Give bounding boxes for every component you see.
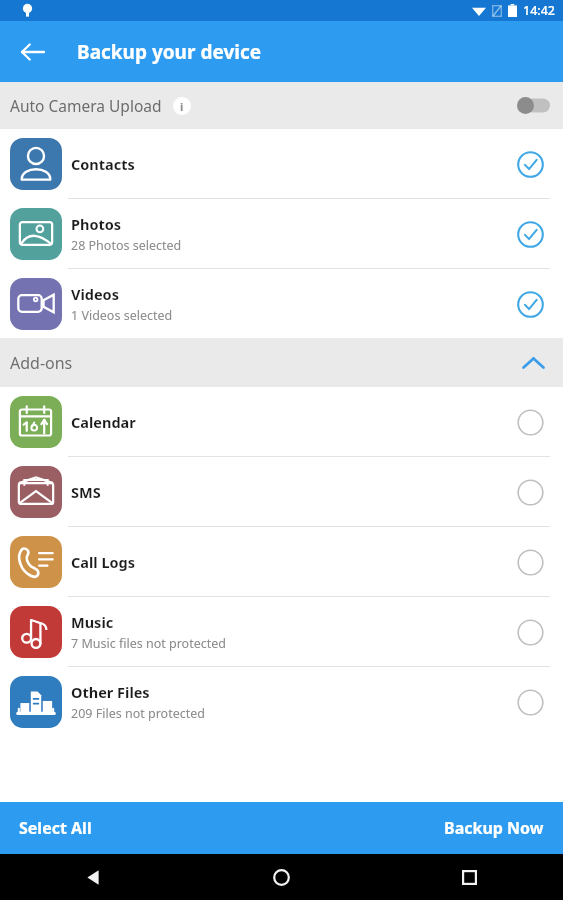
button[interactable]: Recents [375,854,563,900]
button[interactable]: Calendar [0,387,563,456]
staticText: Backup Now [444,817,544,839]
staticText: 14:42 [523,2,556,19]
button[interactable]: Photos [0,199,563,268]
button[interactable]: Home [187,854,375,900]
staticText: Other Files [71,682,150,702]
staticText: 209 Files not protected [71,705,205,722]
button[interactable]: Videos, selected [513,287,547,321]
staticText: i [180,99,184,114]
button[interactable]: SMS [0,457,563,526]
staticText: 28 Photos selected [71,237,182,254]
staticText: Auto Camera Upload [10,95,162,116]
staticText: Call Logs [71,552,136,572]
button[interactable]: Back [0,854,187,900]
staticText: Photos [71,214,122,234]
staticText: Backup your device [77,39,262,65]
staticText: Contacts [71,154,135,174]
button[interactable]: Auto Camera Upload [0,82,563,129]
button[interactable]: Contacts, selected [513,147,547,181]
staticText: 1 Videos selected [71,307,173,324]
staticText: Add-ons [10,352,73,374]
button[interactable]: Call Logs [0,527,563,596]
button[interactable]: Other Files [0,667,563,736]
button[interactable]: Back [8,28,56,76]
button[interactable]: Call Logs, not selected [513,545,547,579]
button[interactable]: Music, not selected [513,615,547,649]
other: Collapse Add-ons [517,347,549,379]
button[interactable]: Photos, selected [513,217,547,251]
button[interactable]: Select All [0,802,111,854]
button[interactable]: Backup Now [425,802,563,854]
staticText: Calendar [71,412,136,432]
staticText: 7 Music files not protected [71,635,226,652]
staticText: Music [71,612,114,632]
button[interactable]: Add-ons [0,338,563,387]
staticText: Select All [19,817,92,839]
button[interactable]: Calendar, not selected [513,405,547,439]
staticText: SMS [71,482,101,502]
button[interactable]: SMS, not selected [513,475,547,509]
button[interactable]: Videos [0,269,563,338]
button[interactable]: Other Files, not selected [513,685,547,719]
button[interactable]: Contacts [0,129,563,198]
staticText: Videos [71,284,119,304]
button[interactable]: Music [0,597,563,666]
button[interactable]: Auto Camera Upload toggle, off [517,97,550,114]
